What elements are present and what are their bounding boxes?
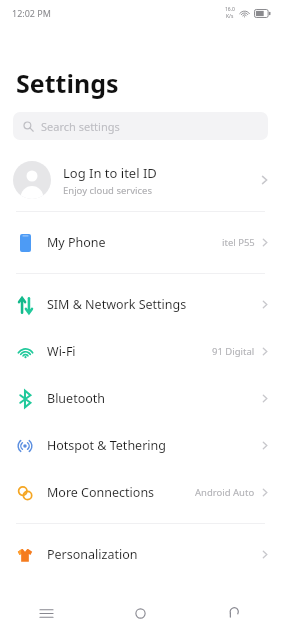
- staticText: itel P55: [222, 236, 255, 249]
- staticText: Enjoy cloud services: [63, 184, 152, 197]
- staticText: 16.0: [225, 6, 235, 13]
- staticText: Hotspot & Tethering: [47, 437, 166, 454]
- button[interactable]: SIM & Network Settings: [0, 281, 281, 328]
- staticText: Bluetooth: [47, 390, 106, 407]
- staticText: Settings: [16, 66, 119, 100]
- button[interactable]: My Phone: [0, 219, 281, 266]
- staticText: Wi-Fi: [47, 343, 76, 360]
- staticText: 91 Digital: [212, 345, 255, 358]
- button[interactable]: Search settings: [13, 112, 268, 140]
- staticText: Search settings: [41, 119, 120, 134]
- button[interactable]: Bluetooth: [0, 375, 281, 422]
- staticText: More Connections: [47, 484, 155, 501]
- button[interactable]: Log In to itel ID: [0, 156, 281, 204]
- staticText: 12:02 PM: [12, 7, 51, 19]
- staticText: K/s: [226, 13, 234, 20]
- staticText: Personalization: [47, 546, 138, 563]
- staticText: My Phone: [47, 234, 106, 251]
- staticText: Android Auto: [195, 486, 255, 499]
- button[interactable]: Personalization: [0, 531, 281, 578]
- staticText: Log In to itel ID: [63, 164, 157, 182]
- button[interactable]: Back: [187, 596, 281, 630]
- button[interactable]: More Connections: [0, 469, 281, 516]
- button[interactable]: Home: [93, 596, 187, 630]
- button[interactable]: Recent apps: [0, 596, 93, 630]
- button[interactable]: Wi-Fi: [0, 328, 281, 375]
- button[interactable]: Hotspot & Tethering: [0, 422, 281, 469]
- staticText: SIM & Network Settings: [47, 296, 187, 313]
